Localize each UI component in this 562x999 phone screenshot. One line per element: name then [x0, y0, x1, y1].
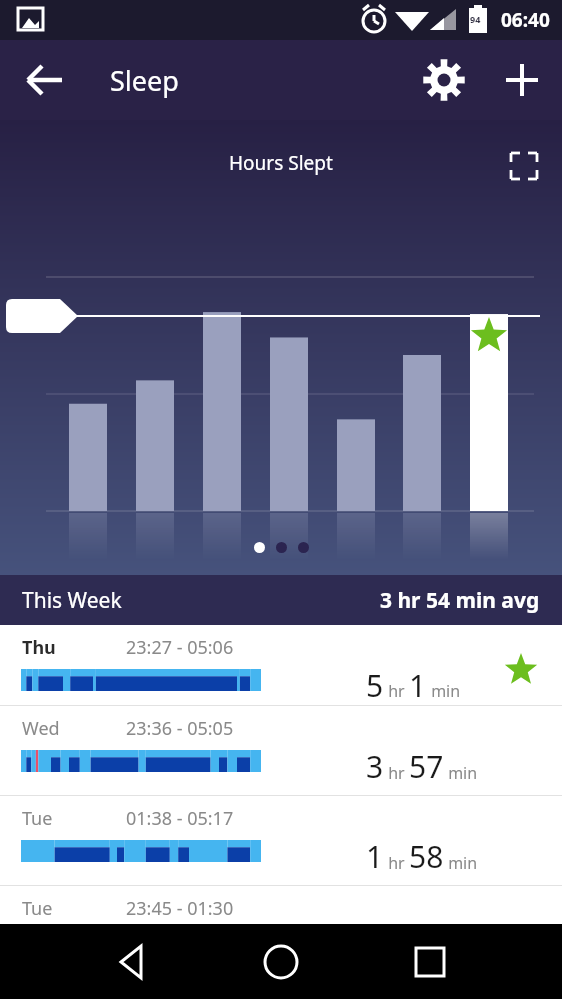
staticText: 23:27 - 05:06: [126, 635, 234, 660]
staticText: Tue: [22, 806, 53, 831]
staticText: 3 hr 54 min avg: [380, 586, 540, 615]
staticText: This Week: [22, 586, 122, 615]
button[interactable]: This Week: [0, 575, 562, 625]
staticText: hr: [384, 762, 409, 784]
staticText: Sleep: [110, 62, 179, 99]
staticText: 23:36 - 05:05: [126, 716, 234, 741]
button[interactable]: Add: [498, 56, 546, 104]
button[interactable]: Back: [108, 938, 156, 986]
staticText: 94: [470, 13, 481, 25]
staticText: 06:40: [501, 7, 550, 33]
button[interactable]: Settings: [420, 56, 468, 104]
staticText: min: [444, 762, 478, 784]
button[interactable]: Tue: [0, 796, 562, 885]
staticText: Tue: [22, 896, 53, 921]
staticText: 23:45 - 01:30: [126, 896, 234, 921]
button[interactable]: Home: [257, 938, 305, 986]
button[interactable]: Thu: [0, 625, 562, 705]
staticText: 58: [409, 836, 444, 877]
staticText: hr: [384, 852, 409, 874]
button[interactable]: Tue: [0, 886, 562, 924]
staticText: hr: [384, 680, 409, 702]
staticText: 01:38 - 05:17: [126, 806, 234, 831]
button[interactable]: Fullscreen: [502, 144, 546, 188]
staticText: 57: [409, 746, 444, 787]
staticText: 1: [366, 836, 384, 877]
staticText: Hours Slept: [229, 150, 333, 176]
staticText: 3: [366, 746, 384, 787]
button[interactable]: Back: [22, 58, 66, 102]
button[interactable]: Wed: [0, 706, 562, 795]
staticText: 5: [366, 665, 384, 705]
staticText: min: [427, 680, 461, 702]
staticText: Thu: [22, 635, 56, 660]
staticText: 1: [409, 665, 427, 705]
button[interactable]: Recents: [406, 938, 454, 986]
staticText: min: [444, 852, 478, 874]
staticText: Wed: [22, 716, 60, 741]
